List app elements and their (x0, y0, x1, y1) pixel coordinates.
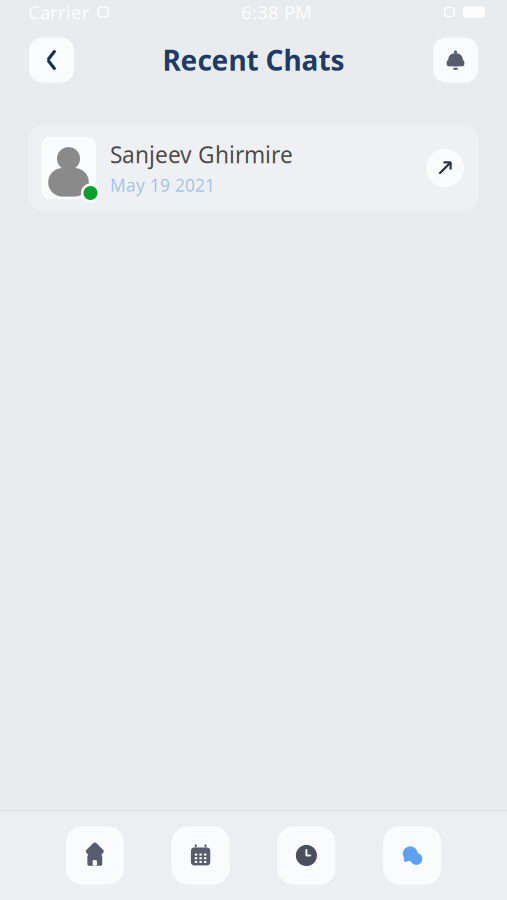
staticText: 6:38 PM (241, 0, 312, 24)
staticText: May 19 2021 (110, 173, 215, 196)
button[interactable]: Sanjeev Ghirmire (28, 124, 479, 212)
button[interactable]: Chats (383, 826, 441, 884)
staticText: Recent Chats (162, 41, 344, 79)
button[interactable]: Notifications (433, 37, 478, 82)
staticText: Sanjeev Ghirmire (110, 139, 293, 169)
button[interactable]: Calendar (172, 826, 230, 884)
staticText: Carrier (28, 0, 90, 24)
button[interactable]: Back (29, 37, 74, 82)
button[interactable]: History (277, 826, 335, 884)
button[interactable]: Home (66, 826, 124, 884)
